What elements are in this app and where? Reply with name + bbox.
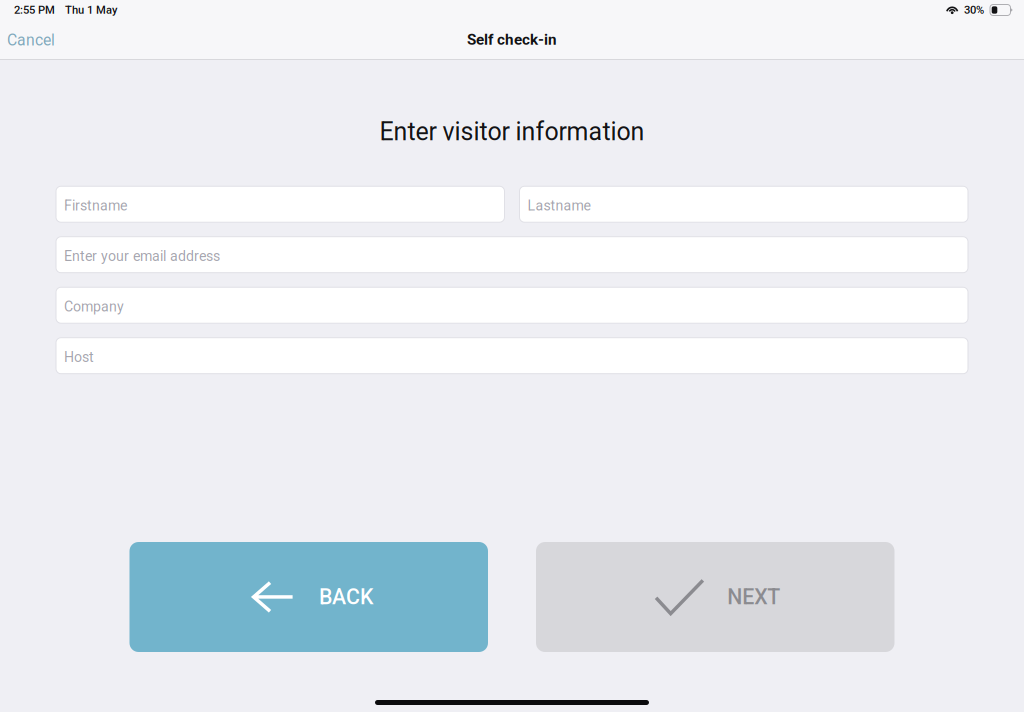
- staticText: Host: [64, 349, 94, 365]
- staticText: Firstname: [64, 197, 127, 214]
- staticText: BACK: [319, 584, 373, 609]
- staticText: Enter visitor information: [379, 117, 644, 146]
- staticText: Enter your email address: [64, 248, 220, 264]
- staticText: 30%: [964, 3, 984, 16]
- staticText: NEXT: [727, 584, 780, 609]
- staticText: Company: [64, 298, 124, 315]
- button[interactable]: BACK: [129, 542, 488, 652]
- button[interactable]: NEXT: [536, 542, 894, 652]
- staticText: Cancel: [7, 31, 55, 49]
- staticText: Thu 1 May: [65, 3, 117, 16]
- staticText: Self check-in: [467, 31, 557, 48]
- button[interactable]: Cancel: [0, 22, 67, 57]
- staticText: 2:55 PM: [14, 3, 55, 16]
- staticText: Lastname: [527, 197, 590, 214]
